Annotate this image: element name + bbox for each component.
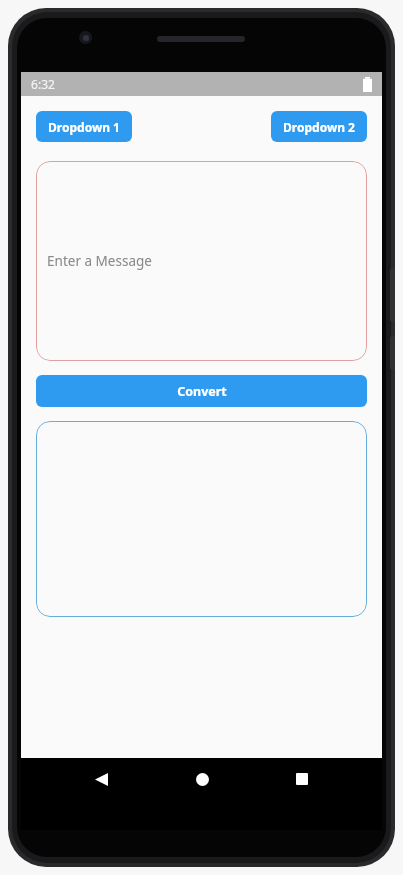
button[interactable]: Home: [182, 766, 222, 792]
staticText: Dropdown 1: [48, 119, 120, 135]
button[interactable]: Dropdown 1: [36, 111, 132, 142]
staticText: Dropdown 2: [283, 119, 355, 135]
staticText: Convert: [177, 383, 227, 400]
button[interactable]: Back: [81, 766, 121, 792]
button[interactable]: Convert: [36, 375, 367, 407]
staticText: 6:32: [31, 76, 55, 92]
staticText: Enter a Message: [47, 252, 152, 270]
button[interactable]: Dropdown 2: [271, 111, 367, 142]
button[interactable]: [36, 421, 367, 617]
button[interactable]: Enter a Message: [36, 161, 367, 361]
button[interactable]: Recent apps: [282, 766, 322, 792]
